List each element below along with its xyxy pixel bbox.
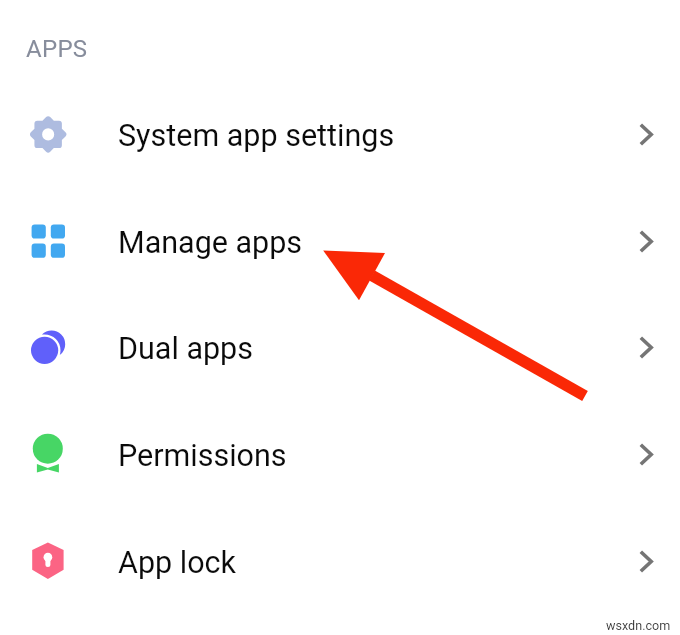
staticText: System app settings [118, 118, 395, 154]
other: Dual apps icon [26, 326, 72, 372]
staticText: Dual apps [118, 331, 253, 367]
staticText: Permissions [118, 438, 287, 474]
button[interactable]: Permissions icon [0, 403, 680, 510]
other: Open Manage apps [639, 230, 653, 253]
button[interactable]: Dual apps icon [0, 296, 680, 403]
other: Manage apps icon [26, 220, 72, 266]
button[interactable]: Manage apps icon [0, 190, 680, 297]
staticText: APPS [26, 35, 88, 63]
staticText: App lock [118, 545, 236, 581]
other: Open System app settings [639, 123, 653, 146]
staticText: Manage apps [118, 225, 303, 261]
other: System app settings icon [26, 113, 72, 159]
other: Permissions icon [26, 433, 72, 479]
button[interactable]: System app settings icon [0, 83, 680, 190]
staticText: wsxdn.com [606, 618, 671, 633]
other: Open Dual apps [639, 336, 653, 359]
other: App lock icon [26, 540, 72, 586]
other: Open App lock [639, 550, 653, 573]
other: Open Permissions [639, 443, 653, 466]
button[interactable]: App lock icon [0, 510, 680, 617]
